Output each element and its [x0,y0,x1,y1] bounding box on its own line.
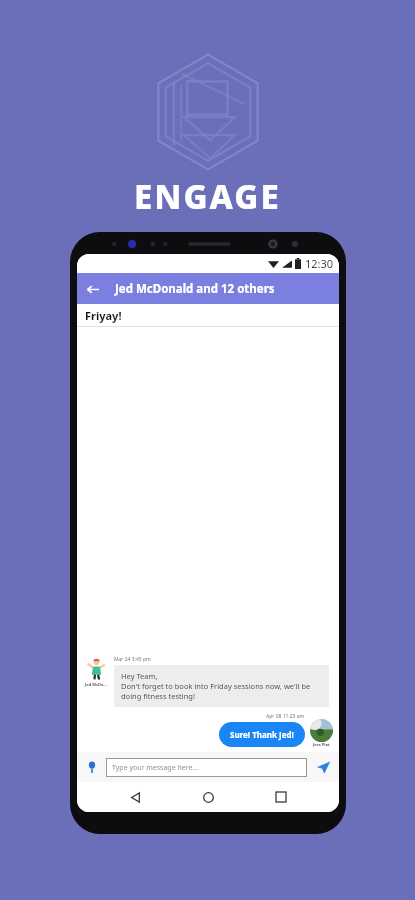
staticText: 12:30 [305,256,334,271]
staticText: Jed McDonald and 12 others [115,281,275,297]
staticText: Friyay! [85,308,122,323]
staticText: Type your message here... [112,763,199,773]
staticText: Sure! Thank Jed! [230,729,294,740]
button[interactable]: Recents [266,782,296,812]
staticText: Jed McDo... [85,682,107,687]
staticText: Don't forget to book into Friday session… [121,681,311,691]
staticText: doing fitness testing! [121,691,195,701]
button[interactable]: Sure! Thank Jed! [219,722,305,747]
button[interactable]: Home [193,782,223,812]
button[interactable]: Attach [83,758,101,776]
staticText: Mar 24 3:45 pm [114,656,151,663]
button[interactable]: Hey Team, [114,665,329,707]
staticText: Hey Team, [121,671,158,681]
button[interactable]: Send [313,757,333,777]
staticText: Apr 08 11:23 am [266,713,305,720]
button[interactable]: Back [120,782,150,812]
button[interactable]: Back [77,274,107,304]
staticText: Jess Piat [313,742,330,747]
staticText: ENGAGE [134,174,281,219]
button[interactable]: Type your message here... [106,758,307,777]
